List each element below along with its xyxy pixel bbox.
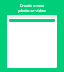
button[interactable] (9, 19, 55, 22)
staticText: Create a new photo or video (17, 3, 47, 13)
